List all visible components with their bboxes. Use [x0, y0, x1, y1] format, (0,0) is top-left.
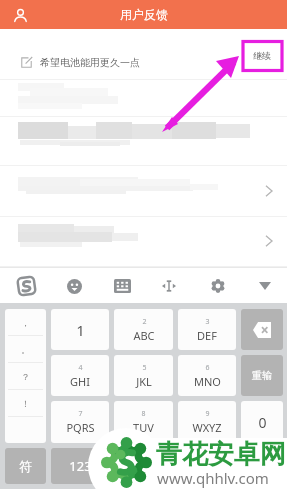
button[interactable]: 7 [51, 401, 109, 443]
staticText: 9 [205, 409, 210, 419]
staticText: 3 [205, 317, 210, 327]
button[interactable]: Sogou input [8, 268, 45, 304]
staticText: 8 [141, 409, 146, 419]
button[interactable]: Space [241, 448, 283, 484]
staticText: 1 [76, 320, 85, 340]
button[interactable]: Backspace [241, 309, 283, 350]
button[interactable]: Settings [202, 271, 234, 301]
staticText: 2 [142, 317, 147, 327]
button[interactable]: Space [114, 448, 173, 484]
staticText: ？ [21, 371, 30, 382]
staticText: DEF [197, 328, 217, 343]
staticText: www.qhhlv.com [157, 468, 269, 488]
staticText: TUV [133, 420, 154, 435]
button[interactable]: 重输 [241, 355, 283, 396]
staticText: 5 [142, 363, 147, 373]
button[interactable]: Keyboard layout [105, 271, 140, 301]
staticText: ABC [133, 328, 155, 343]
button[interactable]: ， [5, 309, 46, 443]
staticText: 123 [69, 457, 92, 475]
staticText: WXYZ [192, 420, 222, 435]
staticText: ！ [21, 398, 30, 409]
staticText: 青花安卓网 [156, 438, 286, 471]
button[interactable]: 。 [5, 336, 46, 362]
staticText: 希望电池能用更久一点 [40, 56, 140, 69]
staticText: JKL [136, 374, 152, 389]
button[interactable]: 6 [178, 355, 236, 396]
button[interactable]: ？ [5, 363, 46, 389]
staticText: 。 [21, 344, 30, 355]
staticText: MNO [194, 374, 221, 389]
staticText: PQRS [66, 420, 95, 435]
button[interactable]: 3 [178, 309, 236, 350]
button[interactable]: Move cursor [152, 270, 186, 302]
staticText: 符 [19, 458, 32, 474]
staticText: 6 [205, 363, 210, 373]
staticText: 4 [78, 363, 83, 373]
button[interactable]: 符 [5, 448, 46, 484]
button[interactable]: Emoji [58, 271, 91, 302]
staticText: 继续 [253, 50, 271, 61]
staticText: 重输 [252, 369, 272, 382]
button[interactable]: 2 [114, 309, 173, 350]
button[interactable]: 继续 [244, 43, 280, 68]
button[interactable]: 123 [51, 448, 109, 484]
button[interactable]: Hide keyboard [250, 274, 280, 298]
button[interactable]: Account [9, 4, 31, 26]
staticText: ， [21, 317, 30, 328]
staticText: GHI [70, 374, 90, 389]
button[interactable]: 0 [241, 401, 283, 443]
staticText: 用户反馈 [120, 7, 168, 22]
button[interactable]: ， [5, 309, 46, 335]
button[interactable]: 9 [178, 401, 236, 443]
button[interactable]: 8 [114, 401, 173, 443]
button[interactable]: ！ [5, 390, 46, 416]
button[interactable]: Space [178, 448, 236, 484]
staticText: 7 [78, 409, 83, 419]
staticText: 0 [258, 413, 267, 432]
button[interactable]: 4 [51, 355, 109, 396]
button[interactable]: 5 [114, 355, 173, 396]
button[interactable]: 1 [51, 309, 109, 350]
